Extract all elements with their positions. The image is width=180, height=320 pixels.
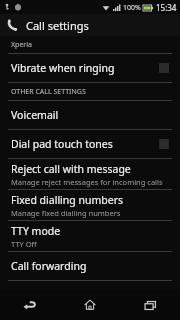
button[interactable]: Fixed dialling numbers — [0, 190, 180, 221]
button[interactable]: Dial pad touch tones — [0, 130, 180, 159]
staticText: Call forwarding — [11, 259, 87, 273]
button[interactable]: Home — [60, 290, 120, 320]
staticText: 15:34 — [156, 2, 177, 13]
button[interactable]: Recent apps — [120, 290, 180, 320]
button[interactable]: Back — [0, 290, 60, 320]
staticText: Dial pad touch tones — [11, 137, 159, 151]
button[interactable]: Reject call with message — [0, 159, 180, 190]
staticText: Call settings — [26, 18, 89, 33]
button[interactable]: Call forwarding — [0, 252, 180, 281]
staticText: TTY Off — [11, 239, 37, 249]
staticText: Voicemail — [11, 108, 59, 122]
staticText: Fixed dialling numbers — [11, 193, 124, 207]
staticText: TTY mode — [11, 224, 61, 238]
other: Call settings — [5, 17, 21, 33]
staticText: Reject call with message — [11, 162, 131, 176]
staticText: Manage fixed dialling numbers — [11, 208, 121, 218]
staticText: OTHER CALL SETTINGS — [11, 87, 86, 97]
staticText: Xperia — [11, 40, 32, 50]
staticText: Manage reject messages for incoming call… — [11, 177, 163, 187]
staticText: Vibrate when ringing — [11, 61, 159, 75]
button[interactable]: Vibrate when ringing — [0, 54, 180, 83]
button[interactable]: TTY mode — [0, 221, 180, 252]
button[interactable]: Call settings — [0, 14, 180, 36]
staticText: 100% — [123, 3, 141, 13]
button[interactable]: Voicemail — [0, 101, 180, 130]
